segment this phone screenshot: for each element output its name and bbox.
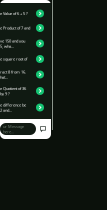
staticText: ract 8 from 16, — [0, 69, 26, 74]
button[interactable]: e Quotient of 36 — [0, 86, 44, 96]
button[interactable]: ur Message here... — [0, 123, 36, 135]
staticText: 5, wha... — [0, 43, 14, 49]
button[interactable]: ve 150 and you — [0, 38, 44, 48]
staticText: e Quotient of 36 — [0, 86, 26, 91]
button[interactable]: e Value of 6 + 5 ? — [0, 9, 44, 17]
staticText: e square root of — [0, 56, 27, 62]
staticText: 2 and... — [0, 107, 12, 113]
button[interactable]: e square root of — [0, 55, 44, 63]
button[interactable]: ract 8 from 16, — [0, 69, 44, 79]
staticText: e Value of 6 + 5 ? — [0, 11, 28, 16]
staticText: hat... — [0, 74, 8, 80]
button[interactable]: e Product of 7 and — [0, 24, 44, 32]
button[interactable]: Open chat — [40, 126, 46, 132]
button[interactable]: e difference be — [0, 102, 44, 112]
staticText: e difference be — [0, 102, 26, 107]
staticText: ur Message here... — [3, 124, 24, 134]
staticText: e Product of 7 and — [0, 25, 30, 31]
staticText: by 9 ? — [0, 91, 10, 96]
staticText: ve 150 and you — [0, 38, 25, 43]
